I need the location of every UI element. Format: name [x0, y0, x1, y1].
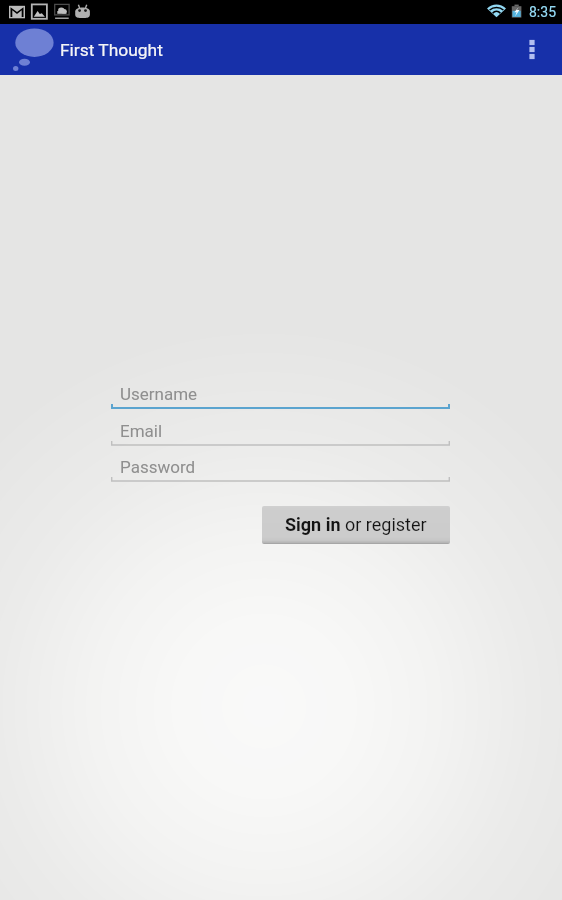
staticText: 8:35 [529, 4, 556, 20]
staticText: First Thought [60, 40, 163, 60]
staticText: Username [120, 384, 198, 404]
button[interactable]: Sign in or register [262, 506, 450, 544]
staticText: Email [120, 421, 163, 441]
button[interactable]: Password [111, 451, 450, 485]
button[interactable]: Username [111, 378, 450, 412]
button[interactable]: More options [516, 24, 562, 75]
staticText: Sign in or register [285, 514, 427, 535]
button[interactable]: Email [111, 415, 450, 449]
staticText: Password [120, 457, 196, 477]
